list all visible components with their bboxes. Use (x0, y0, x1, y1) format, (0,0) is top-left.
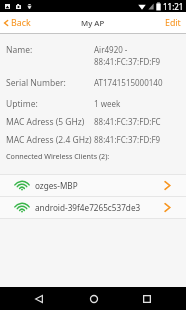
staticText: 88:41:FC:37:FD:FC (94, 116, 161, 127)
button[interactable]: Back (0, 15, 35, 31)
staticText: Name: (6, 44, 94, 56)
staticText: AT1741515000140 (94, 77, 163, 88)
staticText: Uptime: (6, 98, 94, 110)
staticText: My AP (81, 18, 105, 29)
staticText: 88:41:FC:37:FD:F9 (94, 56, 161, 67)
staticText: MAC Adress (2.4 GHz) (6, 134, 94, 146)
staticText: ozges-MBP (35, 180, 164, 191)
staticText: Serial Number: (6, 77, 94, 89)
staticText: Connected Wireless Clients (2): (6, 151, 110, 161)
button[interactable]: Home (81, 287, 106, 310)
staticText: Air4920 - (94, 44, 128, 55)
staticText: 11:21 (163, 1, 184, 12)
staticText: 1 week (94, 98, 121, 109)
staticText: MAC Adress (5 GHz) (6, 116, 94, 128)
staticText: android-39f4e7265c537de3 (35, 202, 164, 213)
button[interactable]: Recent apps (134, 287, 159, 310)
button[interactable]: Back (26, 287, 51, 310)
staticText: 88:41:FC:37:FD:F9 (94, 134, 161, 145)
button[interactable]: ozges-MBP (0, 175, 186, 196)
button[interactable]: android-39f4e7265c537de3 (0, 197, 186, 218)
staticText: Back (11, 17, 31, 29)
button[interactable]: Edit (159, 14, 186, 32)
